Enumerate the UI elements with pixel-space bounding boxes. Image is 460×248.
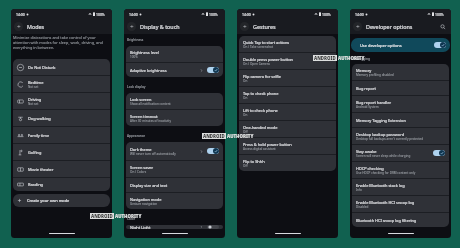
button[interactable]: Adaptive brightness bbox=[126, 63, 223, 77]
button[interactable]: On bbox=[207, 148, 219, 154]
staticText: 100% bbox=[322, 12, 331, 17]
button[interactable]: Bug report handler bbox=[352, 96, 449, 112]
button[interactable]: Driving bbox=[13, 93, 110, 109]
staticText: Off bbox=[243, 130, 248, 134]
button[interactable]: Lift to check phone bbox=[239, 104, 336, 120]
staticText: Not set bbox=[28, 102, 39, 106]
button[interactable]: Enable Bluetooth HCI snoop log bbox=[352, 196, 449, 212]
button[interactable]: Back bbox=[353, 22, 362, 31]
button[interactable]: Dark theme bbox=[126, 142, 223, 160]
staticText: 14:00 bbox=[242, 12, 251, 17]
staticText: One-handed mode bbox=[243, 125, 278, 130]
staticText: On / Open Camera bbox=[243, 62, 270, 66]
staticText: Lock screen bbox=[130, 97, 152, 102]
button[interactable]: Screen timeout bbox=[126, 110, 223, 126]
staticText: 14:00 bbox=[129, 12, 138, 17]
button[interactable]: Off bbox=[207, 225, 219, 229]
button[interactable]: Golfing bbox=[13, 144, 110, 160]
button[interactable]: Back bbox=[14, 22, 23, 31]
staticText: 100% bbox=[435, 12, 444, 17]
button[interactable]: Desktop backup password bbox=[352, 128, 449, 144]
button[interactable]: On bbox=[433, 150, 445, 156]
staticText: Display & touch bbox=[140, 23, 180, 30]
staticText: On bbox=[243, 79, 248, 83]
staticText: Modes bbox=[27, 23, 45, 30]
button[interactable]: Do Not Disturb bbox=[13, 59, 110, 75]
button[interactable]: Create your own mode bbox=[13, 194, 110, 207]
staticText: Screen saver bbox=[130, 165, 154, 170]
button[interactable]: Dog walking bbox=[13, 110, 110, 126]
staticText: On / Colors bbox=[130, 170, 147, 174]
button[interactable]: Flip camera for selfie bbox=[239, 70, 336, 86]
staticText: On / Take screenshot bbox=[243, 45, 274, 49]
button[interactable]: Tap to check phone bbox=[239, 87, 336, 103]
staticText: 100% bbox=[130, 55, 138, 59]
staticText: Bluetooth HCI snoop log filtering bbox=[356, 218, 417, 223]
staticText: Use developer options bbox=[360, 43, 434, 48]
staticText: Will never turn off automatically bbox=[130, 152, 176, 156]
staticText: 14:00 bbox=[355, 12, 364, 17]
staticText: Minimize distractions and take control o… bbox=[13, 35, 107, 50]
staticText: Brightness level bbox=[130, 50, 159, 55]
staticText: Gestures bbox=[253, 23, 276, 30]
staticText: Flip camera for selfie bbox=[243, 74, 281, 79]
button[interactable]: Screen saver bbox=[126, 161, 223, 177]
staticText: Color bbox=[127, 217, 136, 221]
staticText: After 30 minutes of inactivity bbox=[130, 119, 172, 123]
staticText: Debugging bbox=[353, 57, 370, 61]
button[interactable]: Back bbox=[240, 22, 249, 31]
staticText: Use HDCP checking for DRM content only bbox=[356, 171, 416, 175]
staticText: Night Light bbox=[130, 225, 151, 229]
button[interactable]: Press & hold power button bbox=[239, 138, 336, 154]
staticText: Lock display bbox=[127, 85, 146, 89]
button[interactable]: Flip to Shhh bbox=[239, 155, 336, 171]
button[interactable]: Double press power button bbox=[239, 53, 336, 69]
staticText: Double press power button bbox=[243, 57, 293, 62]
button[interactable]: Movie theater bbox=[13, 161, 110, 177]
button[interactable]: Night Light bbox=[126, 225, 223, 229]
button[interactable]: One-handed mode bbox=[239, 121, 336, 137]
staticText: Lift to check phone bbox=[243, 108, 278, 113]
button[interactable]: Search bbox=[438, 22, 447, 31]
button[interactable]: Stay awake bbox=[352, 145, 449, 161]
button[interactable]: Enable Bluetooth stack log bbox=[352, 179, 449, 195]
button[interactable]: Family time bbox=[13, 127, 110, 143]
staticText: Movie theater bbox=[28, 167, 54, 172]
staticText: Desktop full backups aren't currently pr… bbox=[356, 137, 424, 141]
staticText: 14:00 bbox=[16, 12, 25, 17]
button[interactable]: Memory Tagging Extension bbox=[352, 113, 449, 127]
button[interactable]: Memory bbox=[352, 64, 449, 80]
button[interactable]: Quick Tap to start actions bbox=[239, 36, 336, 52]
button[interactable]: On bbox=[434, 42, 446, 48]
staticText: Tap to check phone bbox=[243, 91, 279, 96]
button[interactable]: Bedtime bbox=[13, 76, 110, 92]
button[interactable]: Brightness level bbox=[126, 46, 223, 62]
staticText: Disabled bbox=[356, 205, 369, 209]
staticText: 100% bbox=[96, 12, 105, 17]
button[interactable]: Navigation mode bbox=[126, 193, 223, 209]
staticText: Desktop backup password bbox=[356, 132, 405, 137]
button[interactable]: Display size and text bbox=[126, 178, 223, 192]
staticText: Info bbox=[356, 188, 362, 192]
button[interactable]: On bbox=[207, 67, 219, 73]
staticText: Stay awake bbox=[356, 149, 377, 154]
staticText: AUTHORITY bbox=[115, 213, 142, 219]
staticText: Enable Bluetooth HCI snoop log bbox=[356, 200, 415, 205]
button[interactable]: Use developer options bbox=[351, 38, 450, 52]
staticText: Press & hold power button bbox=[243, 142, 292, 147]
staticText: Gesture navigation bbox=[130, 202, 158, 206]
staticText: Developer options bbox=[366, 23, 413, 30]
button[interactable]: HDCP checking bbox=[352, 162, 449, 178]
staticText: AUTHORITY bbox=[227, 133, 254, 139]
button[interactable]: Reading bbox=[13, 178, 110, 191]
staticText: ANDROID bbox=[91, 213, 113, 219]
staticText: Bug report handler bbox=[356, 100, 392, 105]
button[interactable]: Lock screen bbox=[126, 93, 223, 109]
staticText: ANDROID bbox=[203, 133, 225, 139]
staticText: 100% bbox=[209, 12, 218, 17]
button[interactable]: Back bbox=[127, 22, 136, 31]
staticText: On bbox=[243, 113, 248, 117]
button[interactable]: Bluetooth HCI snoop log filtering bbox=[352, 213, 449, 227]
staticText: Screen timeout bbox=[130, 114, 158, 119]
button[interactable]: Bug report bbox=[352, 81, 449, 95]
